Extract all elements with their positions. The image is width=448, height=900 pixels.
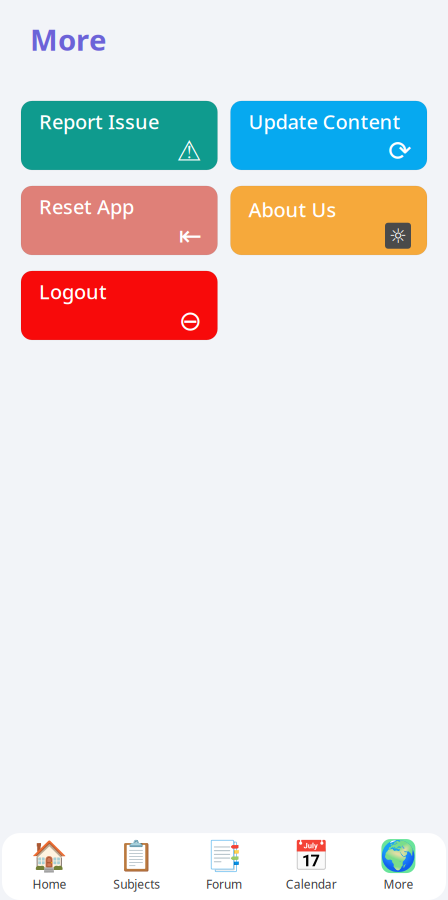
staticText: About Us [248, 196, 336, 223]
staticText: Forum [206, 876, 242, 892]
staticText: More [30, 20, 107, 59]
staticText: Subjects [113, 876, 160, 892]
button[interactable]: Logout [21, 271, 217, 340]
staticText: 🌍 [380, 839, 417, 873]
staticText: Reset App [39, 193, 134, 220]
button[interactable]: Calendar [268, 833, 355, 900]
staticText: 🏠 [31, 839, 68, 873]
button[interactable]: About Us [230, 186, 427, 255]
staticText: ☼ [389, 224, 407, 247]
staticText: Home [33, 876, 67, 892]
button[interactable]: Update Content [230, 101, 427, 170]
button[interactable]: Reset App [21, 186, 217, 255]
button[interactable]: Forum [180, 833, 268, 900]
staticText: 📋 [118, 839, 155, 873]
staticText: 📑 [205, 839, 242, 873]
staticText: Calendar [286, 876, 337, 892]
staticText: ⇤ [178, 220, 201, 252]
button[interactable]: Home [6, 833, 93, 900]
staticText: ⚠ [176, 135, 201, 167]
button[interactable]: Report Issue [21, 101, 217, 170]
staticText: 📅 [293, 839, 330, 873]
staticText: ⊖ [178, 305, 201, 337]
button[interactable]: Subjects [93, 833, 180, 900]
staticText: More [383, 876, 413, 892]
staticText: Update Content [248, 108, 400, 135]
staticText: ⟳ [388, 135, 411, 167]
staticText: Report Issue [39, 108, 159, 135]
staticText: Logout [39, 278, 107, 305]
button[interactable]: More [355, 833, 442, 900]
